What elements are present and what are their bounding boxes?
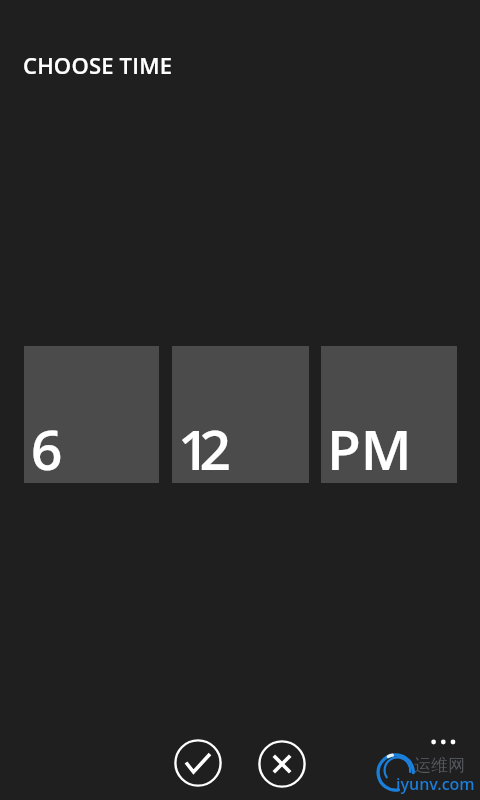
staticText: 6 — [31, 411, 63, 486]
button[interactable]: PM — [321, 346, 457, 483]
staticText: PM — [327, 411, 412, 486]
staticText: CHOOSE TIME — [23, 50, 173, 80]
staticText: 运维网 — [414, 755, 465, 776]
staticText: iyunv.com — [396, 773, 475, 795]
button[interactable]: 6 — [24, 346, 159, 483]
button[interactable]: 12 — [172, 346, 309, 483]
button[interactable]: More options — [419, 726, 465, 758]
button[interactable]: Accept — [170, 735, 226, 791]
staticText: 12 — [178, 411, 221, 486]
button[interactable]: Cancel — [254, 736, 310, 792]
